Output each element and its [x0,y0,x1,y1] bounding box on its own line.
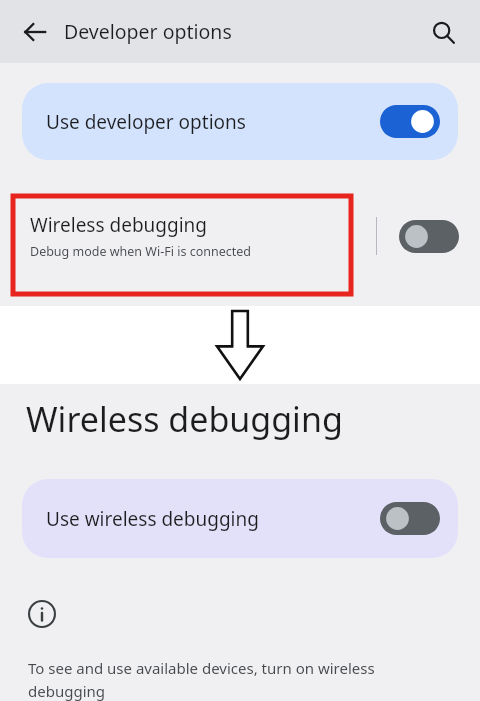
staticText: Wireless debugging [30,212,208,238]
button[interactable] [377,196,480,276]
staticText: Use wireless debugging [46,506,259,532]
button[interactable]: Search [420,9,466,55]
button[interactable]: Use developer options [22,83,458,160]
button[interactable]: Wireless debugging [0,212,376,260]
staticText: Wireless debugging [26,396,343,442]
staticText: To see and use available devices, turn o… [28,658,426,701]
staticText: Developer options [64,18,232,45]
staticText: Debug mode when Wi-Fi is connected [30,243,251,260]
button[interactable]: Back [12,9,58,55]
button[interactable]: Use wireless debugging [22,479,458,558]
staticText: Use developer options [46,109,246,135]
